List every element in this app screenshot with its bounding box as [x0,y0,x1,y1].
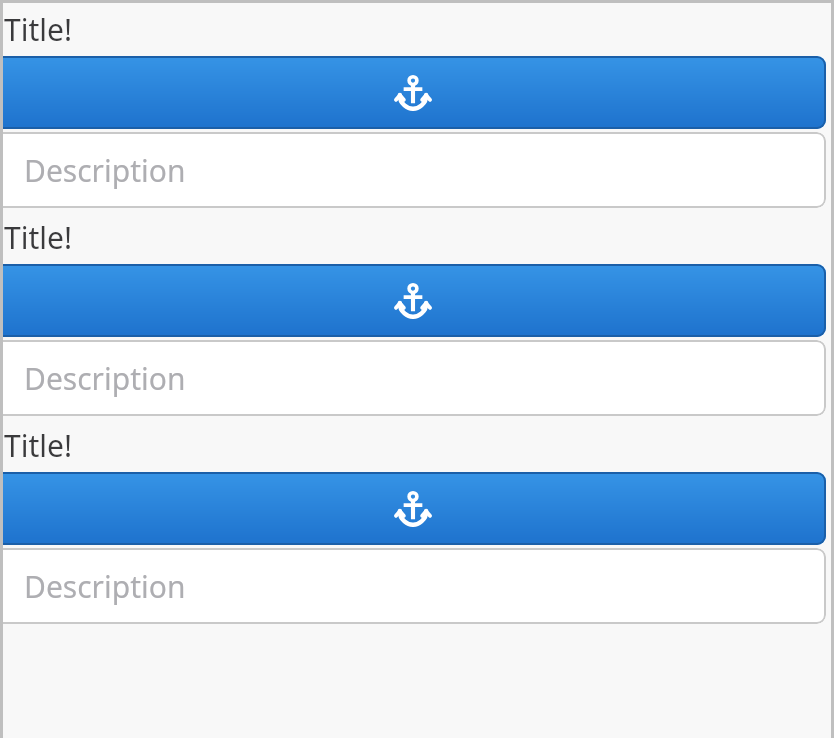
button[interactable]: Anchor [0,264,826,337]
button[interactable]: Anchor [0,56,826,129]
staticText: Description [24,150,186,191]
staticText: Title! [4,9,834,50]
button[interactable]: Description [0,132,826,208]
staticText: Title! [4,425,834,466]
staticText: Description [24,566,186,607]
staticText: Title! [4,217,834,258]
button[interactable]: Description [0,340,826,416]
button[interactable]: Anchor [0,472,826,545]
staticText: Description [24,358,186,399]
button[interactable]: Description [0,548,826,624]
